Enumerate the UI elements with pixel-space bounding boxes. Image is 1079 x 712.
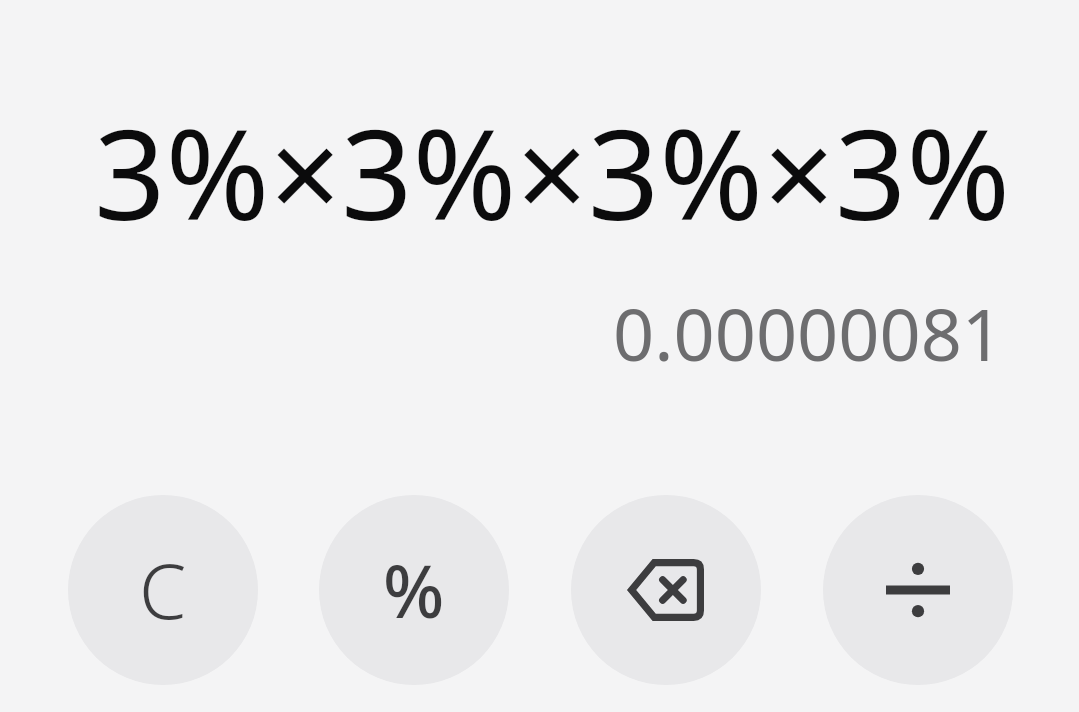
staticText: 3%×3%×3%×3% bbox=[24, 86, 1010, 256]
button[interactable]: Backspace bbox=[571, 495, 761, 685]
button[interactable]: Divide bbox=[823, 495, 1013, 685]
staticText: 0.00000081 bbox=[24, 284, 1003, 382]
button[interactable]: Percent bbox=[319, 495, 509, 685]
staticText: C bbox=[139, 538, 187, 642]
staticText: % bbox=[383, 541, 445, 639]
button[interactable]: Clear bbox=[68, 495, 258, 685]
